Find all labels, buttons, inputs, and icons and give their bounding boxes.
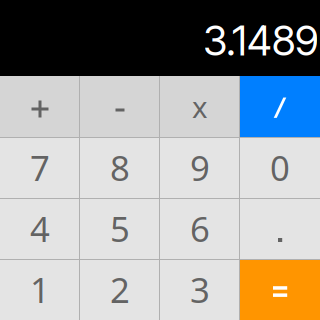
staticText: 7 (30, 144, 50, 190)
button[interactable]: 3 (160, 259, 240, 320)
staticText: 3 (190, 266, 210, 312)
button[interactable]: Equals (240, 259, 320, 320)
staticText: 4 (30, 205, 50, 251)
button[interactable]: 0 (240, 137, 320, 198)
button[interactable]: Add (0, 76, 80, 137)
button[interactable]: 8 (80, 137, 160, 198)
staticText: x (192, 87, 208, 126)
button[interactable]: Decimal point (240, 198, 320, 259)
button[interactable]: 2 (80, 259, 160, 320)
button[interactable]: 7 (0, 137, 80, 198)
button[interactable]: 5 (80, 198, 160, 259)
button[interactable]: 6 (160, 198, 240, 259)
staticText: 3.1489 (203, 15, 318, 65)
staticText: 8 (110, 144, 130, 190)
staticText: 0 (270, 144, 290, 190)
button[interactable]: Subtract (80, 76, 160, 137)
staticText: 9 (190, 144, 210, 190)
staticText: 2 (110, 266, 130, 312)
staticText: 6 (190, 205, 210, 251)
button[interactable]: 9 (160, 137, 240, 198)
button[interactable]: Divide (240, 76, 320, 137)
button[interactable]: 4 (0, 198, 80, 259)
button[interactable]: x (160, 76, 240, 137)
staticText: 1 (30, 266, 50, 312)
button[interactable]: 1 (0, 259, 80, 320)
staticText: 5 (110, 205, 130, 251)
